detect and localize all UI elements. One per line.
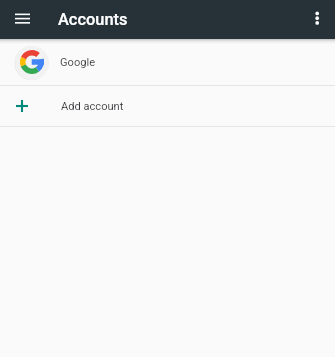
button[interactable]: Open navigation drawer	[7, 5, 37, 35]
button[interactable]: More options	[302, 5, 332, 35]
staticText: Accounts	[58, 10, 128, 29]
staticText: Google	[60, 56, 96, 69]
button[interactable]: Add account	[0, 86, 335, 126]
button[interactable]: Google	[0, 39, 335, 85]
staticText: Add account	[61, 100, 124, 113]
